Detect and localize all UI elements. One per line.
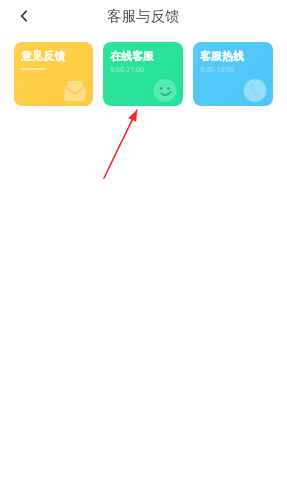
staticText: 9:00-21:00 <box>110 65 145 75</box>
staticText: 客服与反馈 <box>107 7 180 25</box>
button[interactable]: 客服热线 <box>193 42 273 106</box>
staticText: 9:00-18:00 <box>200 65 235 75</box>
staticText: 意见反馈 <box>21 49 65 63</box>
button[interactable]: Back <box>8 0 40 32</box>
staticText: 客服热线 <box>200 49 244 63</box>
button[interactable]: 意见反馈 <box>14 42 93 106</box>
button[interactable]: 在线客服 <box>103 42 183 106</box>
staticText: 在线客服 <box>110 49 154 63</box>
